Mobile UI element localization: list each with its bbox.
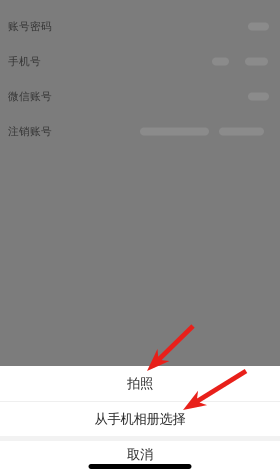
- staticText: 账号密码: [8, 20, 52, 33]
- staticText: 注销账号: [8, 125, 52, 138]
- button[interactable]: 手机号: [0, 44, 280, 79]
- button[interactable]: 账号密码: [0, 9, 280, 44]
- staticText: 取消: [127, 446, 153, 463]
- staticText: 微信账号: [8, 90, 52, 103]
- button[interactable]: 拍照: [0, 366, 280, 401]
- button[interactable]: 从手机相册选择: [0, 402, 280, 436]
- button[interactable]: 微信账号: [0, 79, 280, 114]
- button[interactable]: 取消: [0, 441, 280, 470]
- staticText: 手机号: [8, 55, 41, 68]
- button[interactable]: 注销账号: [0, 114, 280, 149]
- staticText: 从手机相册选择: [94, 411, 185, 427]
- staticText: 拍照: [127, 375, 153, 392]
